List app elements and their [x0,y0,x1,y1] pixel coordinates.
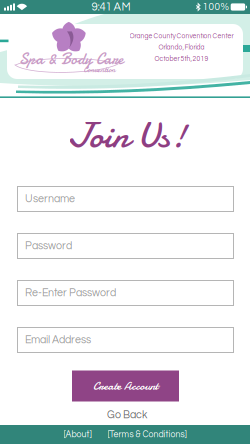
staticText: Convention [83,64,115,75]
staticText: Join Us! [67,111,186,161]
staticText: October 5th, 2019 [154,55,208,62]
staticText: [Terms & Conditions] [107,430,186,439]
staticText: Go Back [107,409,147,420]
button[interactable]: Go Back [95,405,159,424]
staticText: Email Address [25,334,91,345]
staticText: 100% [202,2,228,12]
staticText: Create Account [93,378,158,394]
button[interactable]: Create Account [72,370,179,401]
staticText: Password [25,240,72,251]
staticText: 9:41 AM [92,1,131,13]
staticText: Orange County Convention Center [129,33,233,40]
button[interactable]: [Terms & Conditions] [102,426,191,443]
staticText: Orlando, Florida [158,44,204,51]
button[interactable]: [About] [58,426,96,443]
staticText: [About] [63,430,91,439]
staticText: Spa & Body Care [19,48,123,70]
staticText: Re-Enter Password [25,287,116,298]
staticText: Username [25,193,75,204]
